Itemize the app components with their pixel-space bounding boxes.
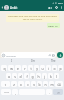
button[interactable]: The xyxy=(43,58,64,64)
staticText: . xyxy=(49,90,50,95)
button[interactable]: ⌫ xyxy=(55,81,63,87)
button[interactable]: I xyxy=(0,58,22,64)
button[interactable]: Call xyxy=(55,6,58,9)
staticText: c xyxy=(27,82,29,87)
staticText: y xyxy=(36,66,38,71)
staticText: e xyxy=(17,66,19,71)
button[interactable]: m xyxy=(49,81,54,87)
button[interactable]: More options xyxy=(60,6,63,9)
staticText: ⇧ xyxy=(4,83,7,86)
button[interactable]: u xyxy=(40,65,45,71)
button[interactable]: v xyxy=(31,81,36,87)
button[interactable]: . xyxy=(46,89,52,95)
staticText: Ankit xyxy=(10,6,48,10)
button[interactable]: Message xyxy=(1,52,56,58)
staticText: h xyxy=(37,74,40,79)
staticText: 9:41 xyxy=(58,1,63,4)
staticText: w xyxy=(10,66,13,71)
staticText: Message xyxy=(6,54,48,57)
button[interactable]: c xyxy=(25,81,30,87)
button[interactable]: a xyxy=(6,73,11,79)
button[interactable]: w xyxy=(8,65,14,71)
staticText: Hello xyxy=(48,24,54,27)
button[interactable]: e xyxy=(15,65,21,71)
staticText: z xyxy=(13,82,15,87)
button[interactable]: g xyxy=(30,73,35,79)
staticText: u xyxy=(41,66,44,71)
button[interactable]: h xyxy=(36,73,41,79)
button[interactable]: r xyxy=(22,65,27,71)
staticText: q xyxy=(3,66,6,71)
button[interactable]: o xyxy=(52,65,57,71)
staticText: , xyxy=(15,90,16,95)
staticText: p xyxy=(59,66,62,71)
button[interactable]: Voice message xyxy=(57,52,63,58)
button[interactable]: I'm xyxy=(22,58,43,64)
staticText: r xyxy=(24,66,26,71)
button[interactable]: i xyxy=(46,65,51,71)
button[interactable]: z xyxy=(11,81,17,87)
button[interactable]: p xyxy=(58,65,63,71)
button[interactable]: x xyxy=(18,81,24,87)
staticText: g xyxy=(31,74,34,79)
button[interactable]: y xyxy=(34,65,39,71)
button[interactable]: f xyxy=(24,73,29,79)
button[interactable]: k xyxy=(48,73,53,79)
button[interactable]: d xyxy=(18,73,23,79)
staticText: o xyxy=(53,66,56,71)
button[interactable]: b xyxy=(37,81,42,87)
staticText: d xyxy=(19,74,22,79)
staticText: I xyxy=(11,59,12,63)
button[interactable]: ⇧ xyxy=(1,81,10,87)
staticText: m xyxy=(50,82,54,87)
staticText: t xyxy=(30,66,32,71)
button[interactable]: n xyxy=(43,81,48,87)
staticText: i xyxy=(48,66,49,71)
staticText: l xyxy=(56,74,57,79)
button[interactable]: s xyxy=(12,73,17,79)
button[interactable]: j xyxy=(42,73,47,79)
staticText: a xyxy=(8,74,10,79)
button[interactable]: ⏎ xyxy=(53,89,63,95)
staticText: b xyxy=(38,82,41,87)
staticText: The xyxy=(51,59,56,63)
staticText: ⏎ xyxy=(57,91,60,94)
staticText: n xyxy=(44,82,47,87)
button[interactable]: t xyxy=(28,65,33,71)
button[interactable]: Back xyxy=(1,6,4,9)
button[interactable]: Hello xyxy=(47,23,60,28)
button[interactable]: q xyxy=(1,65,7,71)
button[interactable]: Video call xyxy=(48,6,52,10)
staticText: ⌫ xyxy=(57,83,61,86)
button[interactable]: Messages and calls are end-to-end encryp… xyxy=(6,14,59,22)
staticText: 9:41 xyxy=(55,25,59,27)
staticText: Messages and calls are end-to-end encryp… xyxy=(7,15,58,21)
staticText: s xyxy=(14,74,16,79)
staticText: I'm xyxy=(31,59,35,63)
staticText: k xyxy=(50,74,52,79)
staticText: v xyxy=(33,82,35,87)
staticText: f xyxy=(26,74,28,79)
button[interactable] xyxy=(4,5,9,10)
staticText: ?123 xyxy=(4,91,9,94)
staticText: j xyxy=(44,74,45,79)
button[interactable]: ?123 xyxy=(1,89,11,95)
button[interactable]: , xyxy=(12,89,18,95)
staticText: x xyxy=(20,82,22,87)
button[interactable]: l xyxy=(54,73,59,79)
